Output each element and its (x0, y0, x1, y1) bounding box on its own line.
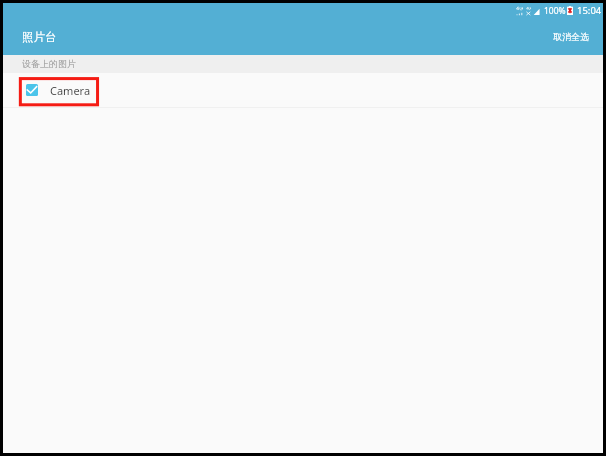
staticText: 照片台 (22, 30, 57, 44)
staticText: 15:04 (577, 4, 602, 17)
button[interactable]: 取消全选 (549, 28, 593, 45)
staticText: Camera (50, 83, 91, 98)
button[interactable]: Camera selected (26, 84, 38, 96)
staticText: 设备上的图片 (22, 58, 76, 69)
staticText: 取消全选 (553, 31, 589, 42)
staticText: 100% (544, 5, 566, 17)
button[interactable]: Camera selected (3, 73, 603, 107)
